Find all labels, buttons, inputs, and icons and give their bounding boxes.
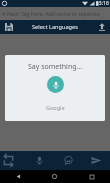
- staticText: Google: [46, 104, 65, 111]
- staticText: 13:16: [96, 0, 109, 7]
- staticText: Say something...: [28, 62, 83, 72]
- button[interactable]: Microphone: [47, 76, 64, 93]
- button[interactable]: Upload: [93, 20, 110, 34]
- button[interactable]: Save: [0, 20, 17, 34]
- staticText: Select Languages: [32, 23, 78, 31]
- button[interactable]: Recent apps: [73, 170, 110, 183]
- button[interactable]: Home: [36, 170, 73, 183]
- button[interactable]: Voice input: [31, 151, 48, 170]
- button[interactable]: Swap languages: [0, 151, 17, 170]
- button[interactable]: Back: [0, 170, 36, 183]
- button[interactable]: Send: [88, 151, 105, 170]
- button[interactable]: Share to WhatsApp: [60, 151, 77, 170]
- staticText: # Hash Tag Here, Add coma to separate: [2, 10, 100, 17]
